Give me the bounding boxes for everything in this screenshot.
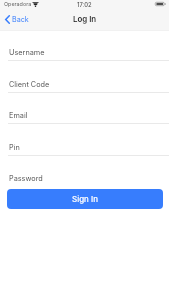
- staticText: Client Code: [9, 80, 50, 89]
- staticText: Password: [9, 174, 43, 183]
- button[interactable]: Back: [0, 11, 34, 29]
- button[interactable]: Username: [0, 40, 169, 61]
- button[interactable]: Email: [0, 103, 169, 124]
- staticText: Sign In: [72, 194, 98, 204]
- button[interactable]: Sign In: [7, 189, 163, 209]
- staticText: Back: [12, 15, 29, 24]
- staticText: Pin: [9, 143, 20, 152]
- staticText: 17:02: [77, 1, 92, 8]
- staticText: Operadora: [4, 1, 32, 8]
- other: Back: [5, 15, 10, 24]
- button[interactable]: Pin: [0, 135, 169, 156]
- staticText: Email: [9, 111, 28, 120]
- staticText: Username: [9, 48, 45, 57]
- button[interactable]: Client Code: [0, 72, 169, 93]
- staticText: Log In: [73, 14, 97, 24]
- button[interactable]: Password: [0, 166, 169, 187]
